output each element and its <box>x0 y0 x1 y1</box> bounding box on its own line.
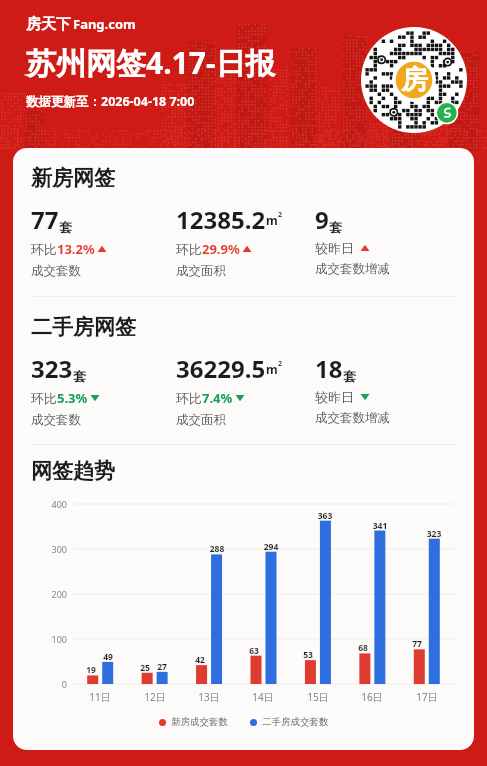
staticText: 100 <box>21 633 67 645</box>
staticText: 42 <box>186 654 214 666</box>
staticText: 77 <box>403 638 431 650</box>
staticText: 13.2% <box>57 240 95 258</box>
staticText: 63 <box>240 645 268 657</box>
staticText: 成交套数 <box>31 412 81 428</box>
staticText: 7.4% <box>202 389 233 407</box>
staticText: 苏州网签4.17-日报 <box>26 42 276 83</box>
staticText: 17日 <box>409 690 445 704</box>
staticText: 11日 <box>82 690 118 704</box>
button[interactable]: 18 <box>315 352 390 426</box>
staticText: 成交面积 <box>176 412 226 428</box>
staticText: 二手房成交套数 <box>262 716 329 728</box>
staticText: 200 <box>21 588 67 600</box>
staticText: 300 <box>21 543 67 555</box>
staticText: 12385.2 <box>176 203 266 236</box>
staticText: 25 <box>131 662 159 674</box>
staticText: 套 <box>329 219 342 235</box>
button[interactable]: 新房成交套数 <box>159 716 228 728</box>
staticText: 288 <box>203 543 231 555</box>
staticText: Fang.com <box>73 15 136 33</box>
staticText: 较昨日 <box>315 240 354 256</box>
staticText: 较昨日 <box>315 389 354 405</box>
button[interactable]: 9 <box>315 203 390 277</box>
staticText: 环比 <box>176 390 202 406</box>
staticText: 19 <box>77 664 105 676</box>
staticText: 36229.5 <box>176 352 266 385</box>
button[interactable]: 323 <box>31 352 100 428</box>
staticText: 2 <box>278 359 283 369</box>
staticText: 套 <box>73 368 86 384</box>
staticText: 房 <box>401 63 428 97</box>
staticText: 环比 <box>31 390 57 406</box>
staticText: 18 <box>315 352 343 385</box>
staticText: 323 <box>420 528 448 540</box>
button[interactable]: 扫描二维码 <box>361 27 467 133</box>
staticText: 成交套数 <box>31 263 81 279</box>
staticText: 房天下 <box>26 15 71 34</box>
staticText: m <box>266 212 278 228</box>
staticText: 27 <box>148 661 176 673</box>
staticText: 12日 <box>137 690 173 704</box>
staticText: 294 <box>257 541 285 553</box>
staticText: 341 <box>366 520 394 532</box>
staticText: 环比 <box>31 241 57 257</box>
staticText: 400 <box>21 498 67 510</box>
button[interactable]: 36229.5 <box>176 352 283 428</box>
staticText: 13日 <box>191 690 227 704</box>
staticText: 新房网签 <box>31 165 115 191</box>
staticText: 53 <box>294 649 322 661</box>
staticText: 323 <box>31 352 73 385</box>
staticText: 成交套数增减 <box>315 261 390 277</box>
staticText: 9 <box>315 203 329 236</box>
staticText: 68 <box>349 642 377 654</box>
staticText: 二手房网签 <box>31 314 136 340</box>
staticText: 49 <box>94 651 122 663</box>
button[interactable]: 77 <box>31 203 107 279</box>
staticText: 2 <box>278 210 283 220</box>
staticText: 数据更新至：2026-04-18 7:00 <box>26 93 195 110</box>
staticText: 成交面积 <box>176 263 226 279</box>
staticText: 套 <box>59 219 72 235</box>
staticText: 363 <box>311 510 339 522</box>
staticText: m <box>266 361 278 377</box>
staticText: 0 <box>21 678 67 690</box>
staticText: 网签趋势 <box>31 458 115 484</box>
staticText: 15日 <box>300 690 336 704</box>
button[interactable]: 二手房成交套数 <box>250 716 329 728</box>
staticText: 16日 <box>354 690 390 704</box>
staticText: 14日 <box>245 690 281 704</box>
staticText: 成交套数增减 <box>315 410 390 426</box>
staticText: 29.9% <box>202 240 240 258</box>
staticText: 套 <box>343 368 356 384</box>
staticText: 5.3% <box>57 389 88 407</box>
button[interactable]: 12385.2 <box>176 203 283 279</box>
staticText: 环比 <box>176 241 202 257</box>
staticText: 77 <box>31 203 59 236</box>
staticText: 新房成交套数 <box>171 716 228 728</box>
